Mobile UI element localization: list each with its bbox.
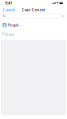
- staticText: Cancel: [3, 7, 15, 12]
- staticText: IT Design: [2, 33, 15, 36]
- button[interactable]: Cancel: [2, 6, 16, 14]
- button[interactable]: People: [2, 22, 23, 28]
- staticText: Cost Center: [21, 7, 45, 12]
- staticText: People: [8, 22, 19, 28]
- staticText: 9:41: [5, 0, 12, 6]
- staticText: ⌄: [20, 23, 22, 26]
